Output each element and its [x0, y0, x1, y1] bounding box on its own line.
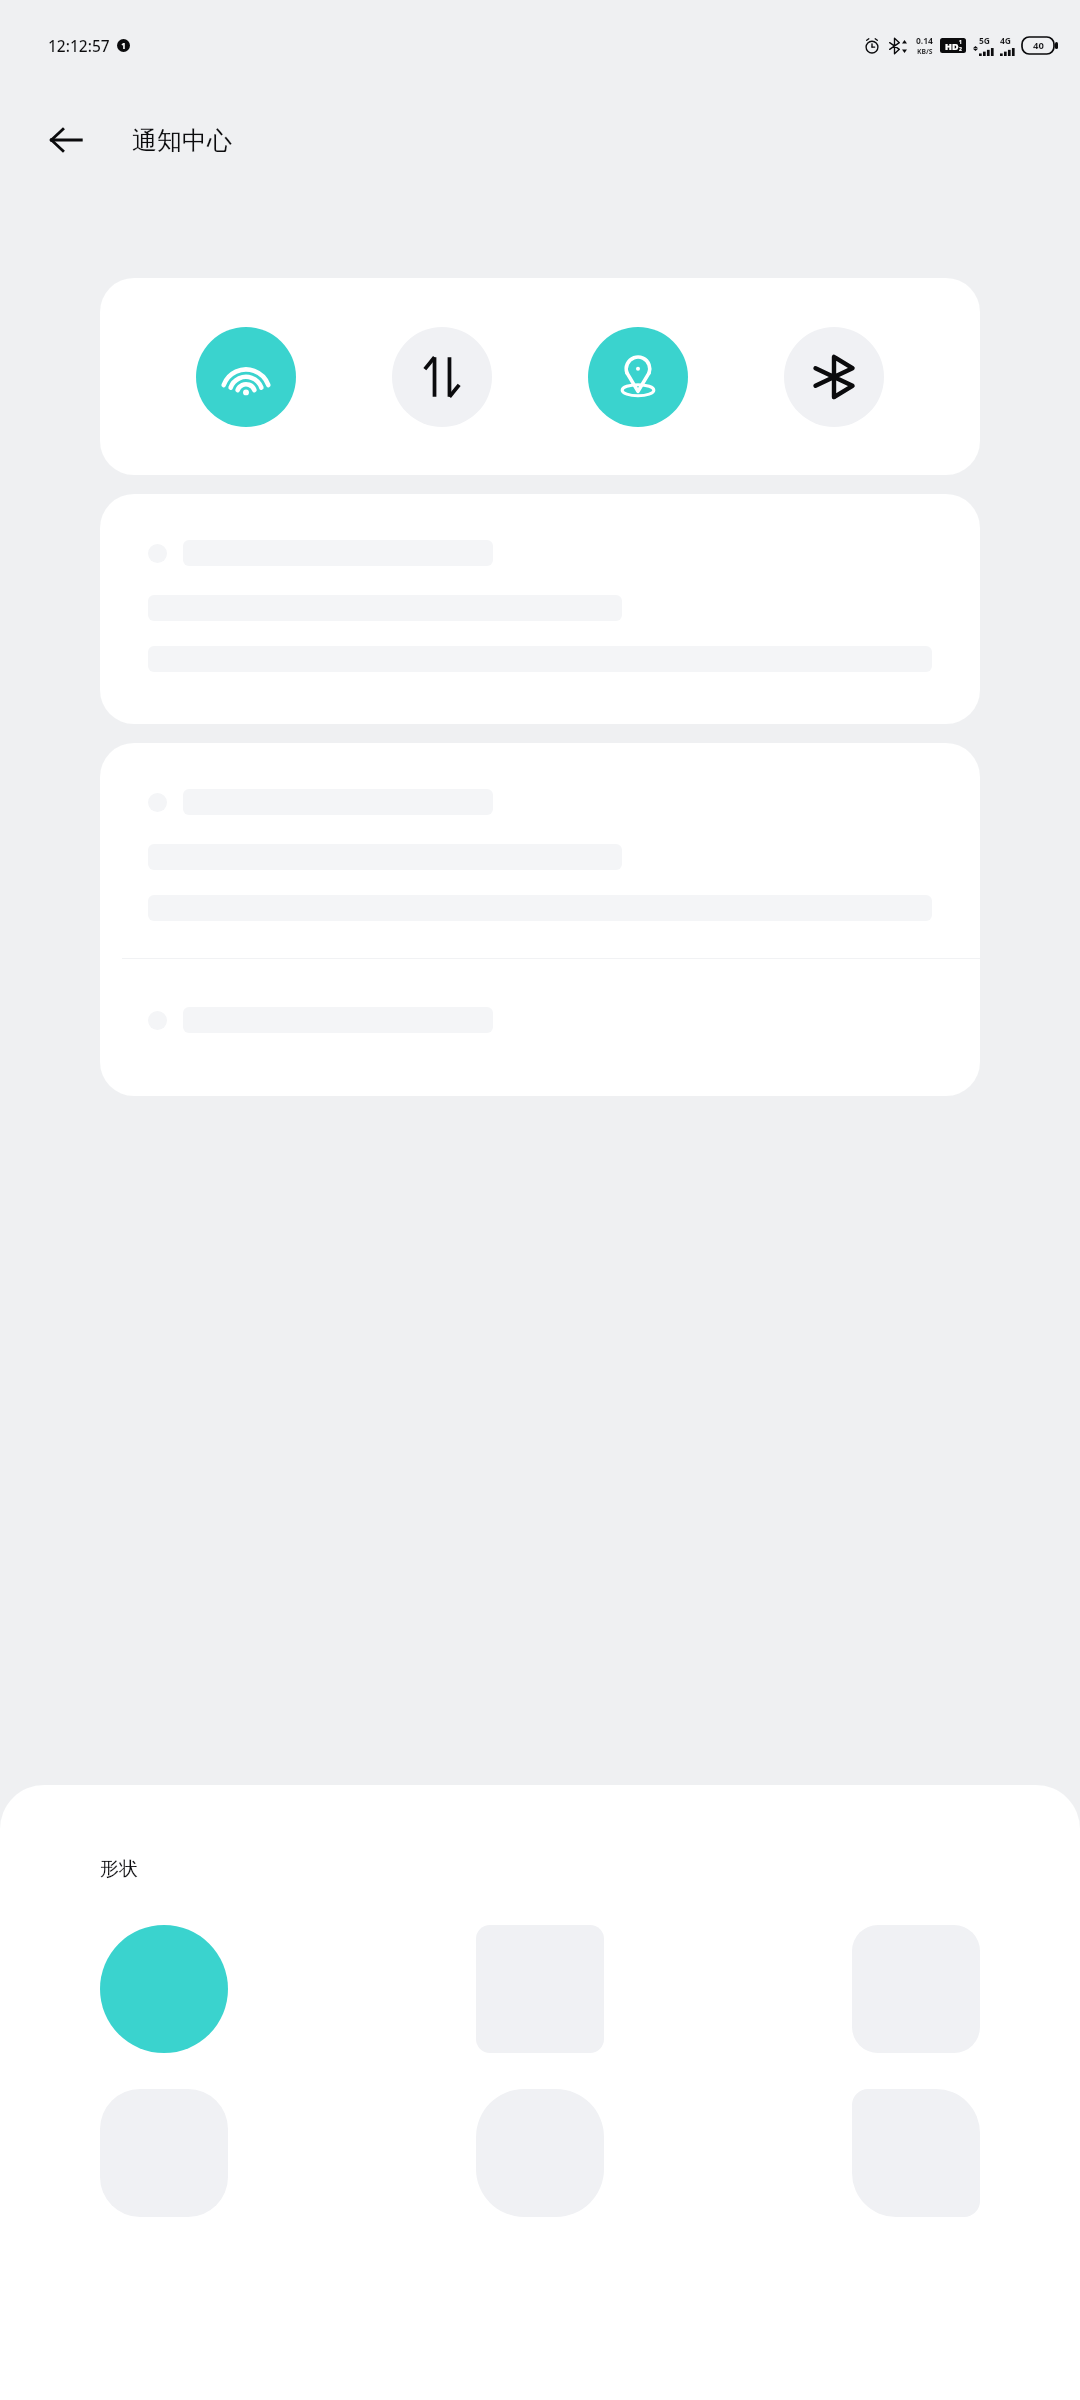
button[interactable]: Bluetooth	[784, 327, 884, 427]
staticText: HD	[945, 40, 959, 52]
staticText: 4G	[1000, 35, 1012, 47]
staticText: 12:12:57	[48, 35, 110, 56]
staticText: 1	[121, 40, 126, 51]
button[interactable]: Shape option 4	[100, 2089, 228, 2217]
button[interactable]: Shape option 1	[100, 1925, 228, 2053]
button[interactable]: Wi-Fi	[196, 327, 296, 427]
staticText: 2	[959, 46, 962, 53]
button[interactable]: Location	[588, 327, 688, 427]
staticText: 0.14	[916, 35, 933, 47]
staticText: 40	[1033, 39, 1044, 52]
staticText: 5G	[979, 35, 991, 47]
button[interactable]	[100, 494, 980, 724]
button[interactable]	[100, 743, 980, 1096]
button[interactable]: Shape option 5	[476, 2089, 604, 2217]
staticText: 1	[959, 39, 962, 46]
staticText: 形状	[100, 1857, 138, 1881]
button[interactable]: Back	[36, 110, 96, 170]
staticText: 通知中心	[132, 125, 232, 156]
button[interactable]: Mobile data	[392, 327, 492, 427]
staticText: KB/S	[917, 47, 933, 56]
button[interactable]: Shape option 6	[852, 2089, 980, 2217]
